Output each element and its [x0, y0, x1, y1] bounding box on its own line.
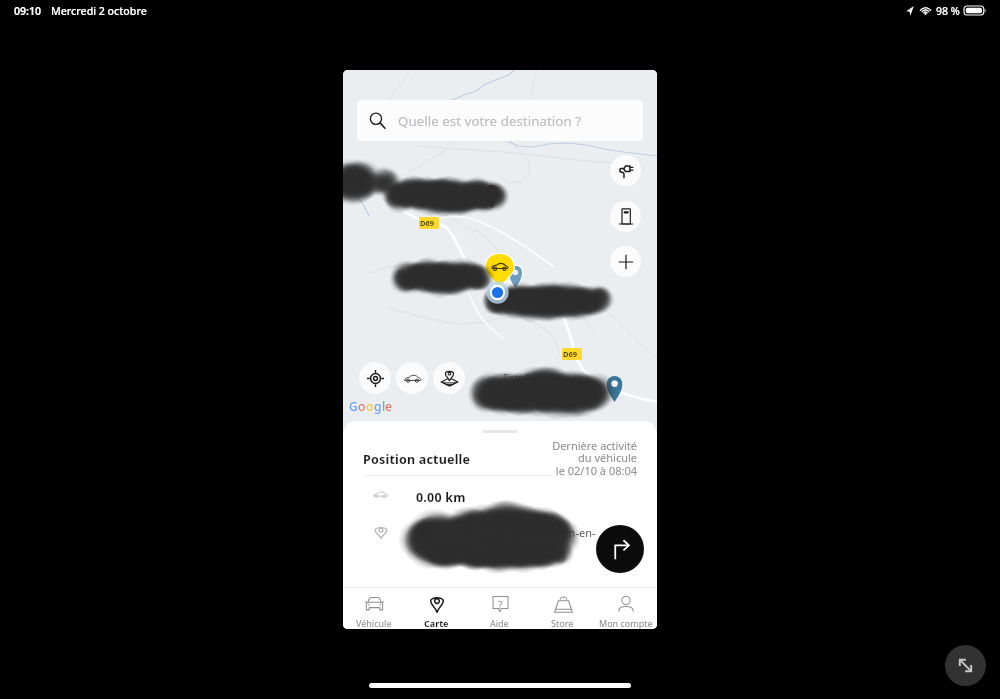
- staticText: CHANTEPERDRIX: [489, 290, 573, 303]
- staticText: Position actuelle: [363, 451, 471, 468]
- button[interactable]: Recharge: [610, 155, 641, 186]
- staticText: e: [385, 398, 392, 414]
- button[interactable]: Véhicule: [343, 588, 405, 629]
- staticText: Carte: [424, 617, 449, 629]
- staticText: D69: [563, 349, 578, 359]
- staticText: o: [358, 398, 366, 414]
- button[interactable]: Mon compte: [594, 588, 657, 629]
- staticText: g: [374, 398, 382, 414]
- button[interactable]: Expand window: [945, 645, 986, 686]
- button[interactable]: Charging stations: [610, 201, 641, 232]
- staticText: 0.00 km: [416, 489, 466, 506]
- staticText: Aide: [490, 617, 509, 629]
- staticText: G: [349, 398, 358, 414]
- staticText: Mon compte: [599, 617, 653, 629]
- button[interactable]: Quelle est votre destination ?: [357, 100, 643, 141]
- staticText: 09:10: [14, 4, 42, 18]
- staticText: Store: [551, 617, 574, 629]
- staticText: o: [366, 398, 374, 414]
- staticText: Véhicule: [356, 617, 392, 629]
- staticText: l: [382, 398, 385, 414]
- button[interactable]: Zoom in: [610, 246, 641, 277]
- button[interactable]: Vehicle: [396, 362, 428, 394]
- button[interactable]: My position: [359, 362, 391, 394]
- staticText: ?: [498, 598, 503, 612]
- staticText: Mercredi 2 octobre: [51, 4, 147, 18]
- staticText: 98 %: [936, 4, 960, 18]
- button[interactable]: Store: [531, 588, 594, 629]
- staticText: Le Rivage de Bagal.: [398, 268, 476, 280]
- button[interactable]: Start navigation: [596, 525, 644, 573]
- staticText: Dernière activité du véhicule le 02/10 à…: [507, 438, 637, 478]
- staticText: Quelle est votre destination ?: [398, 112, 582, 130]
- button[interactable]: ?: [468, 588, 531, 629]
- staticText: Piste Cyclable est du Lac d'Aubiere: [503, 372, 583, 394]
- staticText: D69: [420, 218, 435, 228]
- button[interactable]: Carte: [405, 588, 468, 629]
- button[interactable]: Map layers: [433, 362, 465, 394]
- staticText: 830 Rte ry, 42600 Saint-Romain-en- Champ…: [415, 525, 596, 555]
